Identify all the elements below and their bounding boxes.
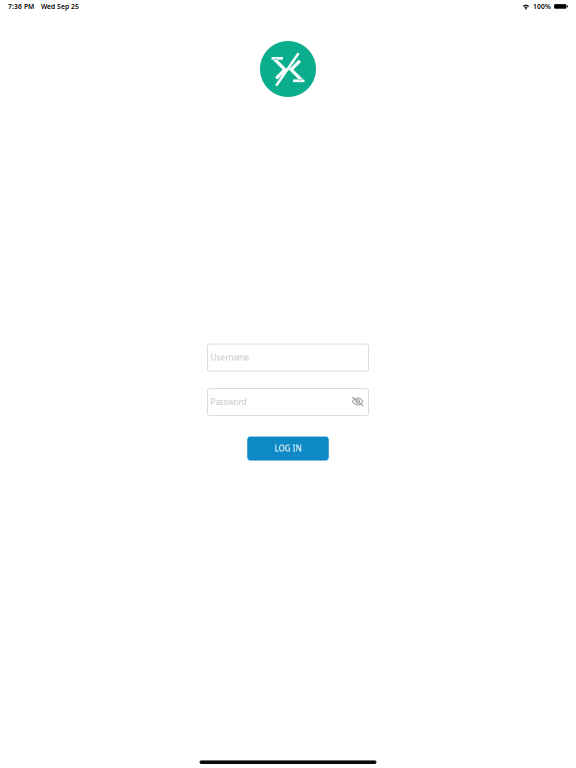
staticText: LOG IN	[274, 443, 301, 454]
button[interactable]: Show password	[351, 395, 364, 408]
button[interactable]: Username	[207, 344, 368, 371]
button[interactable]: Password	[207, 388, 368, 415]
staticText: Wed Sep 25	[41, 2, 79, 11]
staticText: Password	[210, 397, 246, 407]
staticText: 100%	[533, 2, 551, 11]
button[interactable]: LOG IN	[247, 436, 329, 460]
staticText: 7:36 PM	[8, 2, 34, 11]
staticText: Username	[210, 352, 249, 363]
